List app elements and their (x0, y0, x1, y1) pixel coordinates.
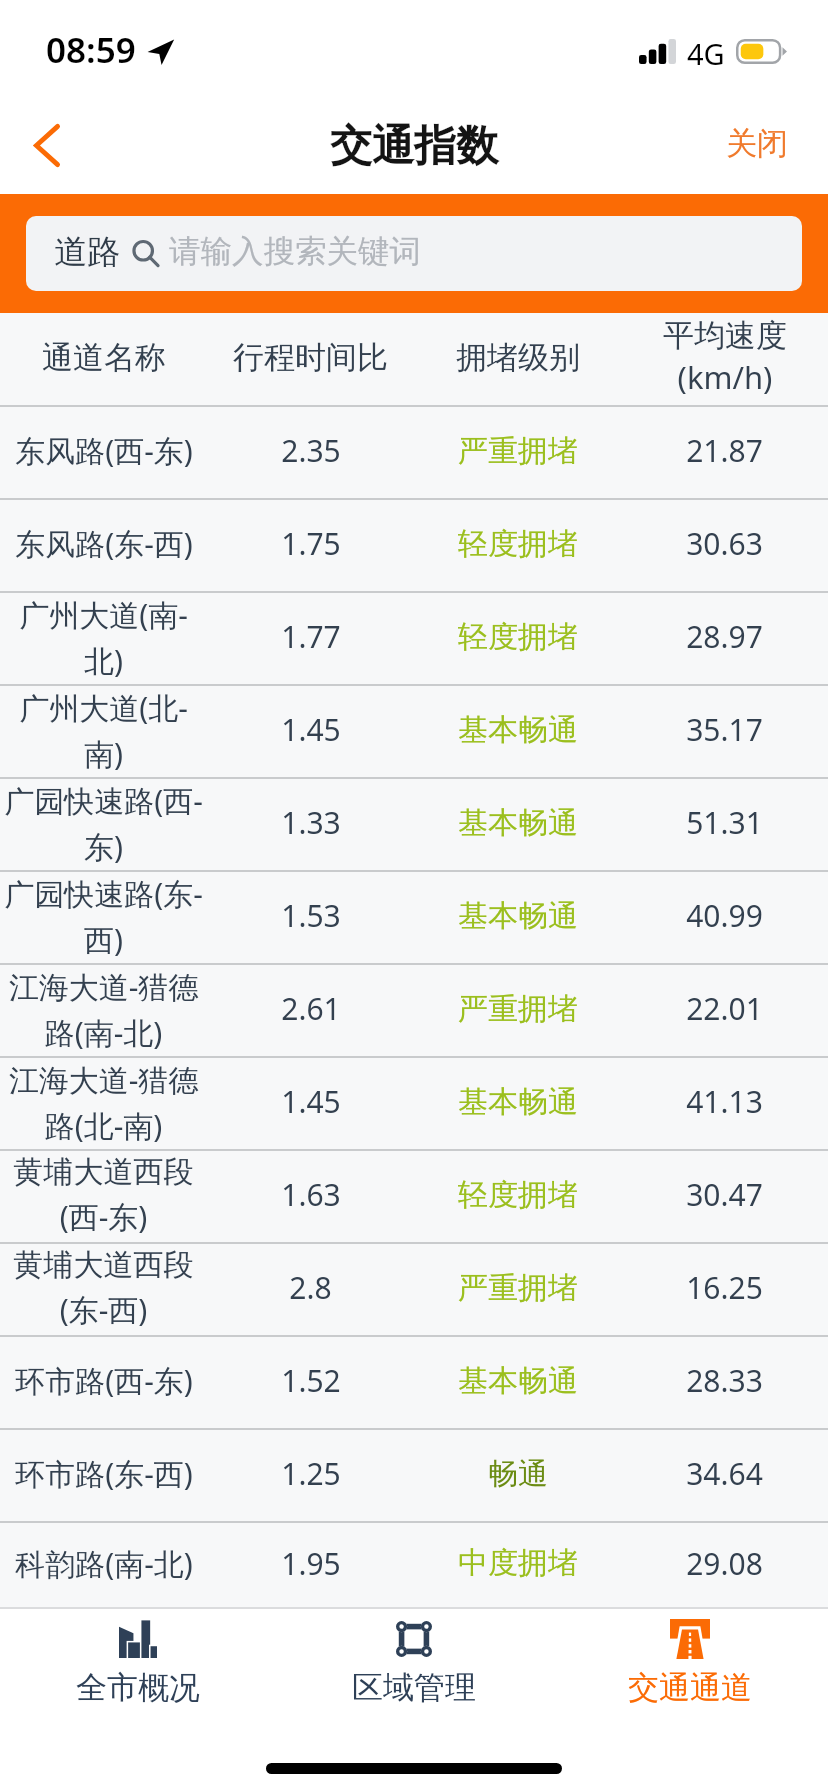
staticText: 2.8 (289, 1267, 332, 1308)
staticText: 关闭 (726, 124, 788, 163)
staticText: 22.01 (686, 988, 763, 1029)
button[interactable]: 江海大道-猎德路(南-北) (0, 965, 828, 1056)
staticText: 28.33 (686, 1360, 763, 1401)
button[interactable]: 广园快速路(西-东) (0, 779, 828, 870)
staticText: 黄埔大道西段(西-东) (0, 1153, 207, 1236)
button[interactable]: 广州大道(南-北) (0, 593, 828, 684)
staticText: 广州大道(南-北) (0, 594, 207, 680)
staticText: 交通通道 (628, 1668, 752, 1707)
staticText: 1.75 (281, 523, 341, 564)
staticText: 江海大道-猎德路(北-南) (0, 1059, 207, 1145)
staticText: 基本畅通 (458, 804, 578, 842)
staticText: 1.45 (281, 709, 341, 750)
staticText: 40.99 (686, 895, 763, 936)
staticText: 1.33 (281, 802, 341, 843)
staticText: 中度拥堵 (458, 1544, 578, 1582)
staticText: 1.25 (281, 1453, 341, 1494)
staticText: 29.08 (686, 1543, 763, 1584)
staticText: 1.63 (281, 1174, 341, 1215)
button[interactable]: 东风路(东-西) (0, 500, 828, 591)
button[interactable]: 东风路(西-东) (0, 407, 828, 498)
staticText: 全市概况 (76, 1668, 200, 1707)
staticText: 30.63 (686, 523, 763, 564)
button[interactable]: 区域管理 (276, 1609, 552, 1727)
staticText: 轻度拥堵 (458, 618, 578, 656)
staticText: 基本畅通 (458, 897, 578, 935)
staticText: 请输入搜索关键词 (169, 232, 421, 272)
staticText: 1.45 (281, 1081, 341, 1122)
staticText: 环市路(东-西) (15, 1453, 193, 1494)
staticText: 严重拥堵 (458, 432, 578, 470)
button[interactable]: 关闭 (726, 96, 788, 194)
staticText: 2.61 (281, 988, 341, 1029)
staticText: 41.13 (686, 1081, 763, 1122)
staticText: 51.31 (686, 802, 763, 843)
staticText: 35.17 (686, 709, 763, 750)
staticText: 1.95 (281, 1543, 341, 1584)
button[interactable]: 黄埔大道西段(东-西) (0, 1244, 828, 1335)
staticText: 广州大道(北-南) (0, 687, 207, 773)
button[interactable]: 交通通道 (552, 1609, 828, 1727)
staticText: 道路 (54, 231, 120, 273)
staticText: 广园快速路(西-东) (0, 780, 207, 866)
staticText: 黄埔大道西段(东-西) (0, 1246, 207, 1329)
staticText: 16.25 (686, 1267, 763, 1308)
staticText: 基本畅通 (458, 711, 578, 749)
staticText: 广园快速路(东-西) (0, 873, 207, 959)
button[interactable]: 广州大道(北-南) (0, 686, 828, 777)
staticText: 28.97 (686, 616, 763, 657)
staticText: 1.77 (281, 616, 341, 657)
staticText: 轻度拥堵 (458, 525, 578, 563)
button[interactable]: 江海大道-猎德路(北-南) (0, 1058, 828, 1149)
button[interactable]: 道路 (26, 216, 802, 291)
button[interactable]: 黄埔大道西段(西-东) (0, 1151, 828, 1242)
staticText: 2.35 (281, 430, 341, 471)
staticText: 08:59 (46, 26, 136, 74)
button[interactable]: 全市概况 (0, 1609, 276, 1727)
staticText: 轻度拥堵 (458, 1176, 578, 1214)
button[interactable]: Back (0, 96, 94, 194)
staticText: 21.87 (686, 430, 763, 471)
button[interactable]: 广园快速路(东-西) (0, 872, 828, 963)
staticText: 基本畅通 (458, 1362, 578, 1400)
staticText: 严重拥堵 (458, 1269, 578, 1307)
staticText: 基本畅通 (458, 1083, 578, 1121)
staticText: 交通指数 (330, 120, 498, 173)
button[interactable]: 科韵路(南-北) (0, 1523, 828, 1607)
staticText: 科韵路(南-北) (15, 1543, 193, 1584)
staticText: 环市路(西-东) (15, 1360, 193, 1401)
button[interactable]: 环市路(东-西) (0, 1430, 828, 1521)
button[interactable]: 环市路(西-东) (0, 1337, 828, 1428)
staticText: 东风路(东-西) (15, 523, 193, 564)
staticText: 30.47 (686, 1174, 763, 1215)
staticText: 4G (687, 34, 725, 73)
staticText: 拥堵级别 (456, 338, 580, 377)
staticText: 江海大道-猎德路(南-北) (0, 966, 207, 1052)
staticText: 区域管理 (352, 1668, 476, 1707)
staticText: 畅通 (488, 1455, 548, 1493)
staticText: 严重拥堵 (458, 990, 578, 1028)
staticText: 34.64 (686, 1453, 763, 1494)
staticText: 东风路(西-东) (15, 430, 193, 471)
staticText: 行程时间比 (233, 338, 388, 377)
staticText: 通道名称 (42, 338, 166, 377)
staticText: 平均速度 (km/h) (663, 316, 787, 398)
staticText: 1.53 (281, 895, 341, 936)
staticText: 1.52 (281, 1360, 341, 1401)
